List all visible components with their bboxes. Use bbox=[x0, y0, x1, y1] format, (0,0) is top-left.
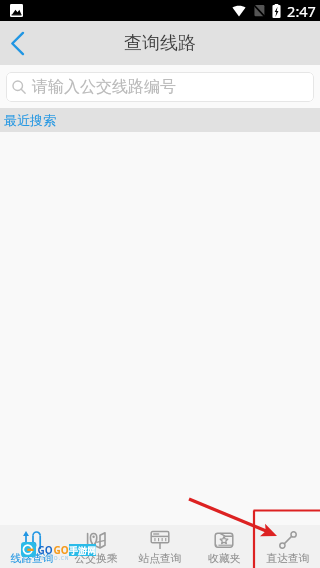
staticText: 收藏夹 bbox=[208, 552, 241, 566]
button[interactable]: 站点查询 bbox=[128, 525, 192, 568]
staticText: GO bbox=[53, 543, 69, 557]
staticText: 手游网 bbox=[69, 545, 96, 556]
button[interactable]: 请输入公交线路编号 bbox=[6, 72, 314, 102]
staticText: 查询线路 bbox=[124, 32, 196, 55]
staticText: 站点查询 bbox=[138, 552, 182, 566]
staticText: GO bbox=[37, 543, 53, 557]
staticText: G O G O . C N bbox=[40, 555, 69, 561]
button[interactable]: 直达查询 bbox=[256, 525, 320, 568]
staticText: 线路查询 bbox=[10, 552, 54, 566]
staticText: 直达查询 bbox=[266, 552, 310, 566]
button[interactable]: 收藏夹 bbox=[192, 525, 256, 568]
button[interactable]: 线路查询 bbox=[0, 525, 64, 568]
button[interactable]: 公交换乘 bbox=[64, 525, 128, 568]
staticText: 最近搜索 bbox=[4, 112, 56, 128]
staticText: 公交换乘 bbox=[74, 552, 118, 566]
button[interactable]: Back bbox=[0, 21, 34, 65]
staticText: 2:47 bbox=[287, 1, 316, 21]
staticText: 请输入公交线路编号 bbox=[32, 77, 176, 97]
